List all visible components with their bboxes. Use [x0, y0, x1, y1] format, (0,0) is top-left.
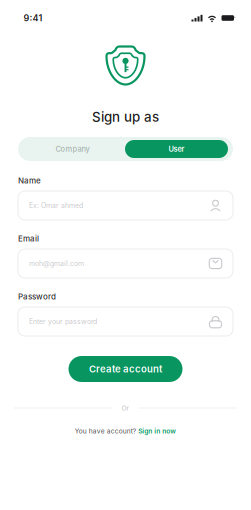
staticText: Create account: [89, 363, 162, 375]
staticText: Sign up as: [92, 109, 159, 125]
staticText: Password: [18, 292, 56, 301]
staticText: Name: [18, 176, 41, 185]
staticText: Email: [18, 234, 39, 243]
button[interactable]: Enter your password: [18, 307, 233, 336]
button[interactable]: User: [125, 140, 228, 158]
staticText: Company: [55, 144, 89, 153]
staticText: User: [168, 144, 184, 153]
button[interactable]: moh@gmail.com: [18, 249, 233, 278]
button[interactable]: Company: [20, 137, 125, 161]
staticText: Or: [121, 404, 129, 412]
button[interactable]: Create account: [68, 356, 182, 382]
button[interactable]: You have account?: [75, 427, 176, 435]
staticText: Ex: Omar ahmed: [29, 201, 83, 210]
staticText: Enter your password: [29, 317, 97, 326]
staticText: Sign in now: [138, 427, 176, 435]
staticText: moh@gmail.com: [29, 259, 84, 268]
staticText: You have account?: [75, 427, 136, 435]
button[interactable]: Ex: Omar ahmed: [18, 191, 233, 220]
staticText: 9:41: [23, 12, 42, 23]
